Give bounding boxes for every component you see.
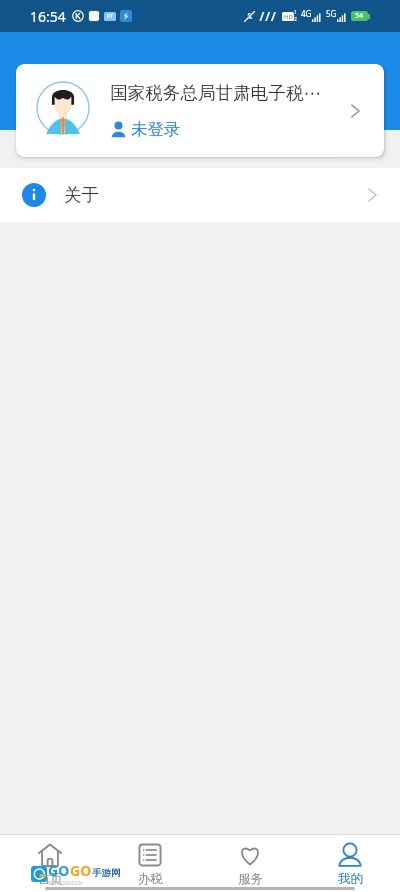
staticText: 关于 <box>64 184 99 206</box>
staticText: WWW.GOGO.CN <box>48 880 82 886</box>
staticText: HD <box>284 13 293 21</box>
button[interactable]: 国家税务总局甘肃电子税⋯ <box>16 64 384 157</box>
staticText: 16:54 <box>30 7 66 26</box>
button[interactable]: 我的 <box>300 835 400 887</box>
staticText: 我的 <box>338 871 363 887</box>
staticText: 2 <box>294 16 297 23</box>
staticText: 4G <box>301 8 312 19</box>
staticText: 首页 <box>38 871 63 887</box>
button[interactable]: 关于 <box>0 168 400 222</box>
staticText: GO <box>48 861 70 880</box>
staticText: RT <box>107 13 113 20</box>
staticText: GO <box>70 861 92 880</box>
staticText: 54 <box>355 11 364 21</box>
staticText: 国家税务总局甘肃电子税⋯ <box>110 82 322 104</box>
staticText: 办税 <box>138 871 163 887</box>
staticText: 1 <box>294 9 297 16</box>
staticText: 手游网 <box>92 867 121 879</box>
button[interactable]: 办税 <box>100 835 200 887</box>
staticText: 未登录 <box>131 119 181 140</box>
button[interactable]: 首页 <box>0 835 100 887</box>
staticText: 5G <box>326 8 337 19</box>
button[interactable]: 服务 <box>200 835 300 887</box>
staticText: 服务 <box>238 871 263 887</box>
